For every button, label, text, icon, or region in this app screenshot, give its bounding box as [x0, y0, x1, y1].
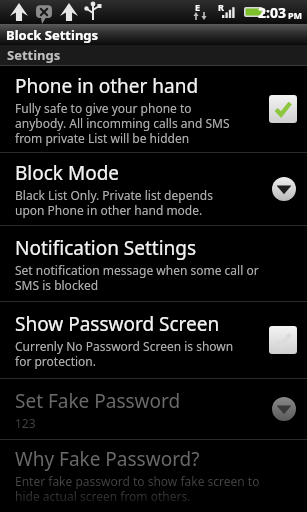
staticText: Settings: [7, 46, 61, 64]
staticText: PM: [288, 9, 303, 21]
staticText: Show Password Screen: [15, 311, 220, 337]
staticText: E: [195, 1, 201, 13]
button[interactable]: Notification Settings: [0, 226, 307, 301]
staticText: 2:03: [258, 3, 286, 22]
staticText: Fully safe to give your phone to anybody…: [15, 100, 230, 146]
staticText: Set notification message when some call …: [15, 262, 259, 293]
staticText: Enter fake password to show fake screen …: [15, 473, 260, 504]
staticText: Why Fake Password?: [15, 446, 200, 472]
staticText: Block Settings: [6, 26, 99, 44]
staticText: Set Fake Password: [15, 388, 181, 414]
staticText: Block Mode: [15, 160, 120, 186]
button[interactable]: Block Mode: [0, 153, 307, 225]
staticText: R: [218, 1, 224, 13]
button[interactable]: Show Password Screen: [0, 302, 307, 378]
button[interactable]: Enabled: [269, 95, 297, 123]
button[interactable]: Open dropdown: [271, 396, 297, 422]
staticText: Phone in other hand: [15, 73, 199, 99]
staticText: Black List Only. Private list depends up…: [15, 187, 213, 218]
button[interactable]: Open dropdown: [271, 176, 297, 202]
staticText: 123: [15, 415, 36, 431]
staticText: Currenly No Password Screen is shown for…: [15, 338, 234, 369]
button[interactable]: Phone in other hand: [0, 66, 307, 152]
staticText: Notification Settings: [15, 235, 197, 261]
button[interactable]: Disabled: [269, 326, 297, 354]
button[interactable]: Why Fake Password?: [0, 440, 307, 510]
button[interactable]: Set Fake Password: [0, 379, 307, 439]
